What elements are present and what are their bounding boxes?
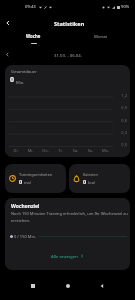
staticText: mal	[24, 180, 31, 185]
staticText: 90%	[121, 4, 130, 10]
staticText: 0,6	[121, 118, 127, 123]
staticText: Di.	[9, 148, 23, 153]
staticText: Monat	[94, 33, 108, 39]
staticText: So.	[83, 148, 98, 153]
button[interactable]: Kalorien	[69, 164, 130, 193]
staticText: Gesamtdauer	[11, 69, 37, 74]
staticText: Wochenziel	[11, 203, 40, 210]
button[interactable]: Trainingseinheiten	[5, 164, 66, 193]
staticText: Min.	[16, 80, 25, 85]
staticText: 0,0	[121, 142, 127, 147]
staticText: 0	[10, 75, 15, 85]
staticText: Noch 150 Minuten Training erforderlich, …	[11, 211, 130, 224]
staticText: 31.03. - 06.04.	[54, 52, 82, 58]
staticText: Statistiken	[54, 20, 85, 28]
button[interactable]: Gesamtdauer	[5, 65, 130, 157]
staticText: 0	[83, 178, 87, 185]
button[interactable]: Back	[0, 15, 16, 31]
button[interactable]: Previous week	[2, 49, 13, 60]
staticText: Woche	[26, 33, 41, 39]
staticText: Mo.	[98, 148, 113, 153]
staticText: Mi.	[23, 148, 38, 153]
button[interactable]: Recent apps	[25, 278, 41, 294]
button[interactable]: Alle anzeigen	[5, 248, 130, 264]
staticText: Kalorien	[83, 172, 98, 177]
staticText: 0 / 150 Min.	[14, 234, 36, 239]
staticText: 09:43	[25, 4, 36, 10]
staticText: 1,2	[121, 93, 127, 98]
staticText: Sa.	[68, 148, 83, 153]
staticText: 0	[19, 178, 23, 185]
staticText: 0,3	[121, 130, 127, 135]
staticText: Alle anzeigen	[51, 253, 78, 259]
staticText: kcal	[88, 180, 95, 185]
staticText: 0,9	[121, 105, 127, 110]
button[interactable]: Monat	[67, 31, 135, 45]
staticText: Do.	[38, 148, 53, 153]
staticText: Fr.	[53, 148, 68, 153]
button[interactable]: Woche	[0, 31, 67, 45]
staticText: Trainingseinheiten	[19, 172, 53, 177]
button[interactable]: Home	[60, 278, 76, 294]
button[interactable]: Back	[94, 278, 110, 294]
